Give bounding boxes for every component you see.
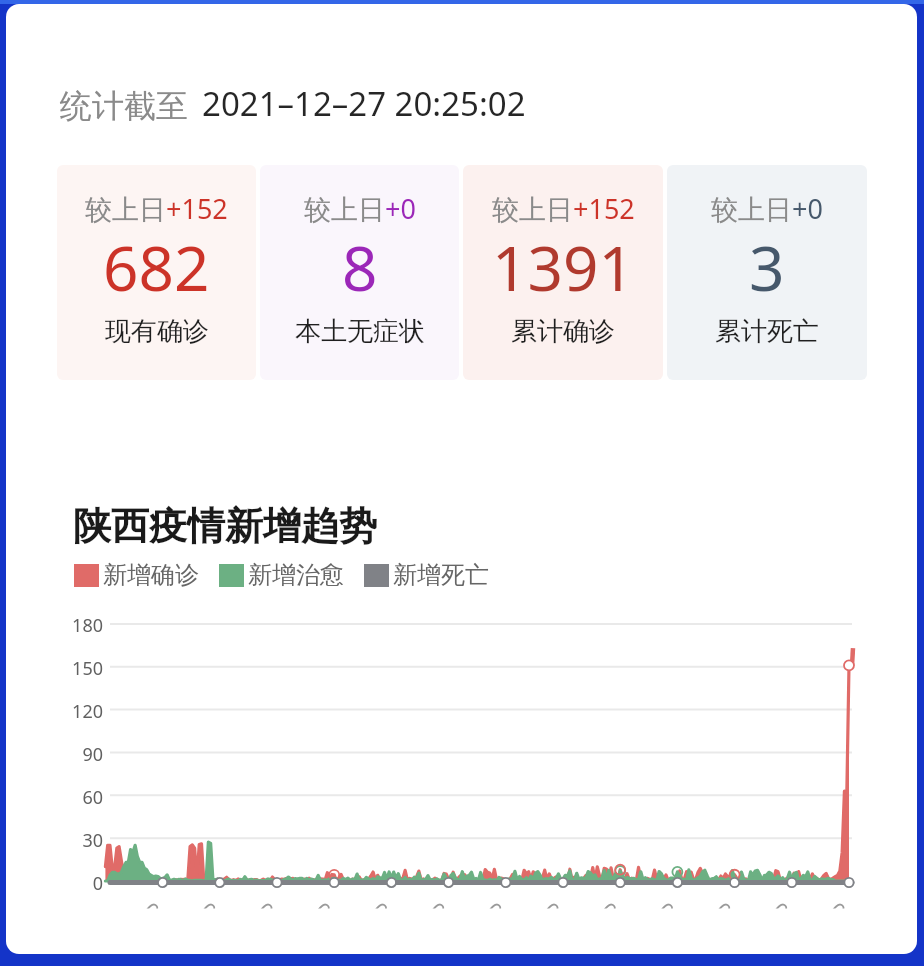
staticText: 累计确诊 — [511, 315, 615, 348]
staticText: 0 — [37, 871, 103, 896]
staticText: 180 — [37, 613, 103, 638]
staticText: 新增确诊 — [103, 560, 199, 590]
staticText: 120 — [37, 699, 103, 724]
staticText: +0 — [792, 190, 823, 227]
staticText: 150 — [37, 656, 103, 681]
button[interactable]: 较上日 — [463, 165, 663, 380]
staticText: 8 — [342, 225, 378, 309]
staticText: 1391 — [492, 225, 634, 309]
staticText: 60 — [37, 785, 103, 810]
staticText: 较上日 — [85, 193, 166, 227]
staticText: +152 — [166, 190, 228, 227]
staticText: 较上日 — [492, 193, 573, 227]
staticText: 3 — [749, 225, 785, 309]
staticText: 较上日 — [304, 193, 385, 227]
staticText: 现有确诊 — [105, 315, 209, 348]
staticText: 682 — [103, 225, 210, 309]
staticText: 累计死亡 — [715, 315, 819, 348]
staticText: 新增死亡 — [393, 560, 489, 590]
staticText: 陕西疫情新增趋势 — [73, 502, 377, 550]
button[interactable]: 较上日 — [57, 165, 256, 380]
staticText: 本土无症状 — [295, 315, 425, 348]
staticText: +152 — [573, 190, 635, 227]
staticText: 新增治愈 — [248, 560, 344, 590]
staticText: 较上日 — [711, 193, 792, 227]
button[interactable]: 较上日 — [667, 165, 867, 380]
staticText: 30 — [37, 828, 103, 853]
staticText: +0 — [385, 190, 416, 227]
button[interactable]: 较上日 — [260, 165, 459, 380]
staticText: 2021–12–27 20:25:02 — [202, 81, 526, 126]
staticText: 90 — [37, 742, 103, 767]
staticText: 统计截至 — [60, 86, 188, 126]
